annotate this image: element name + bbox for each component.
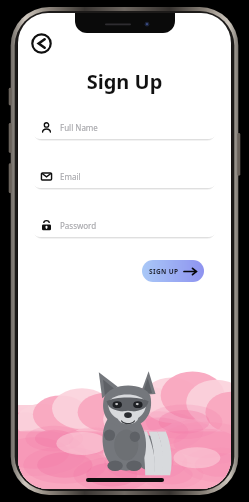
button[interactable]: Back [28,30,54,56]
button[interactable]: Password [32,213,217,237]
staticText: Password [60,220,97,231]
button[interactable]: Full Name [32,115,217,139]
staticText: SIGN UP [149,267,179,276]
staticText: Email [60,171,81,182]
staticText: Full Name [60,122,98,133]
button[interactable]: Email [32,164,217,188]
staticText: Sign Up [18,68,231,95]
button[interactable]: SIGN UP [142,260,204,282]
